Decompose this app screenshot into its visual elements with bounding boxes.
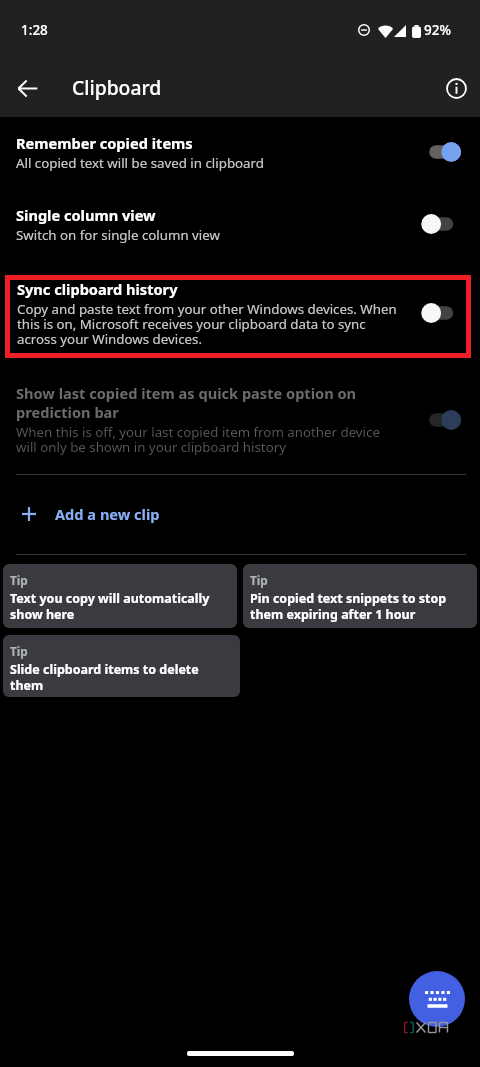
staticText: Sync clipboard history	[17, 280, 178, 299]
staticText: Single column view	[16, 206, 156, 225]
staticText: All copied text will be saved in clipboa…	[16, 156, 394, 171]
staticText: Tip	[10, 645, 28, 659]
staticText: Tip	[10, 574, 28, 588]
button[interactable]: Remember copied items	[0, 128, 480, 192]
button[interactable]: Tip	[243, 564, 477, 628]
button[interactable]: Back	[9, 70, 46, 107]
staticText: 1:28	[21, 22, 48, 38]
button[interactable]: Sync clipboard history	[5, 275, 471, 358]
staticText: Slide clipboard items to delete them	[10, 662, 233, 694]
button[interactable]: Switch on	[417, 403, 465, 437]
button[interactable]: Switch off	[417, 207, 465, 241]
staticText: Show last copied item as quick paste opt…	[16, 384, 406, 422]
staticText: Copy and paste text from your other Wind…	[17, 302, 405, 347]
button[interactable]: Single column view	[0, 200, 480, 264]
staticText: Text you copy will automatically show he…	[10, 591, 230, 623]
staticText: 92%	[424, 22, 451, 38]
staticText: Clipboard	[72, 76, 162, 100]
button[interactable]: Switch off	[417, 296, 465, 330]
staticText: Tip	[250, 574, 268, 588]
button[interactable]: Switch on	[417, 135, 465, 169]
staticText: When this is off, your last copied item …	[16, 425, 394, 455]
button[interactable]: Show last copied item as quick paste opt…	[0, 378, 480, 460]
staticText: Pin copied text snippets to stop them ex…	[250, 591, 470, 623]
button[interactable]: Tip	[3, 564, 237, 628]
staticText: Add a new clip	[55, 504, 160, 524]
staticText: Remember copied items	[16, 134, 193, 153]
button[interactable]: Keyboard	[409, 971, 465, 1027]
button[interactable]: Info	[436, 68, 476, 108]
button[interactable]: Tip	[3, 635, 240, 697]
staticText: Switch on for single column view	[16, 228, 394, 243]
button[interactable]: Add a new clip	[0, 486, 480, 542]
